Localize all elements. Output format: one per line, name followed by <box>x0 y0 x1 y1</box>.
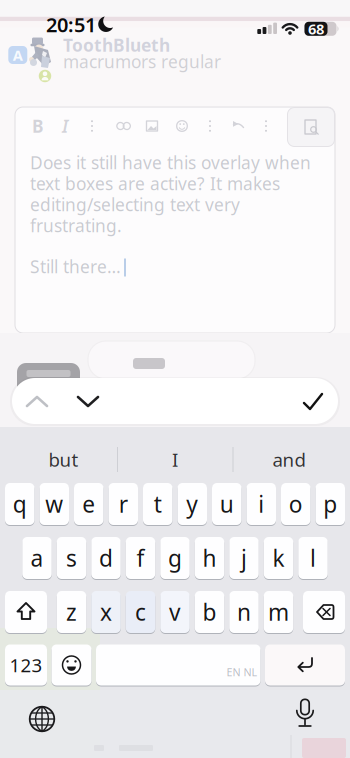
staticText: e <box>82 489 95 519</box>
staticText: EN NL <box>226 665 257 679</box>
staticText: B <box>32 114 44 137</box>
staticText: p <box>323 489 337 519</box>
staticText: t <box>154 489 162 519</box>
staticText: but <box>48 447 78 472</box>
staticText: k <box>272 543 284 573</box>
staticText: u <box>220 489 234 519</box>
staticText: c <box>135 597 146 627</box>
staticText: A <box>13 45 23 65</box>
staticText: r <box>119 489 128 519</box>
staticText: z <box>66 597 77 627</box>
staticText: q <box>13 489 27 519</box>
staticText: w <box>45 489 63 519</box>
staticText: g <box>168 543 182 573</box>
staticText: a <box>30 543 43 573</box>
staticText: Does it still have this overlay when <box>30 151 311 174</box>
staticText: o <box>289 489 303 519</box>
staticText: 68 <box>308 19 324 39</box>
staticText: Still there… <box>30 255 121 278</box>
staticText: f <box>136 543 144 573</box>
staticText: frustrating. <box>30 214 122 237</box>
staticText: d <box>99 543 113 573</box>
staticText: editing/selecting text very <box>30 193 240 216</box>
staticText: 20:51 <box>46 11 96 38</box>
staticText: ToothBlueth <box>63 33 170 56</box>
staticText: i <box>258 489 264 519</box>
staticText: and <box>272 447 305 472</box>
staticText: x <box>100 597 112 627</box>
staticText: I <box>62 114 68 137</box>
staticText: j <box>241 543 247 573</box>
staticText: v <box>169 597 181 627</box>
staticText: b <box>202 597 216 627</box>
staticText: s <box>66 543 77 573</box>
staticText: text boxes are active? It makes <box>30 172 280 195</box>
staticText: I <box>172 447 178 472</box>
staticText: l <box>310 543 316 573</box>
staticText: 123 <box>9 653 42 677</box>
staticText: macrumors regular <box>63 50 221 73</box>
staticText: n <box>237 597 251 627</box>
staticText: h <box>202 543 216 573</box>
staticText: m <box>268 597 289 627</box>
staticText: y <box>186 489 198 519</box>
